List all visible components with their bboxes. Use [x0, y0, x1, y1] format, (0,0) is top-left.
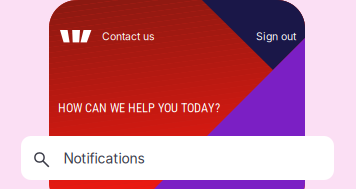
staticText: Sign out	[256, 30, 296, 43]
button[interactable]: Contact us	[98, 26, 159, 47]
staticText: Notifications	[63, 150, 144, 167]
button[interactable]: Sign out	[252, 26, 300, 47]
staticText: Contact us	[102, 30, 155, 43]
staticText: HOW CAN WE HELP YOU TODAY?	[58, 101, 220, 115]
button[interactable]: Notifications	[21, 136, 334, 180]
